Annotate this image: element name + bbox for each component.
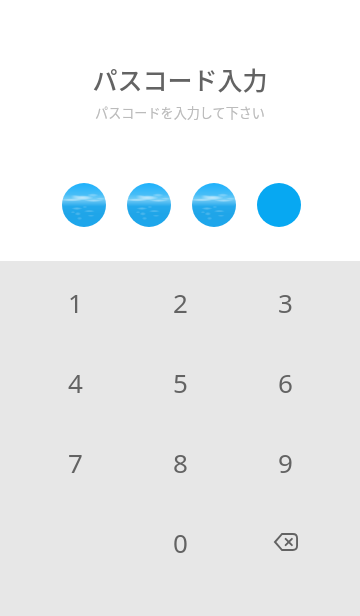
other: Delete bbox=[274, 533, 298, 551]
staticText: 4 bbox=[68, 365, 83, 400]
staticText: 2 bbox=[173, 285, 188, 320]
button[interactable]: 5 bbox=[128, 342, 233, 422]
staticText: 0 bbox=[173, 525, 188, 560]
staticText: 3 bbox=[278, 285, 293, 320]
staticText: 6 bbox=[278, 365, 293, 400]
button[interactable]: 0 bbox=[128, 502, 233, 582]
button[interactable]: 8 bbox=[128, 422, 233, 502]
staticText: 8 bbox=[173, 445, 188, 480]
button[interactable]: 3 bbox=[233, 262, 338, 342]
staticText: 7 bbox=[68, 445, 83, 480]
button[interactable]: Delete bbox=[233, 502, 338, 582]
button[interactable]: 6 bbox=[233, 342, 338, 422]
staticText: 1 bbox=[68, 285, 83, 320]
button[interactable]: 4 bbox=[23, 342, 128, 422]
button[interactable]: 7 bbox=[23, 422, 128, 502]
button[interactable]: 2 bbox=[128, 262, 233, 342]
button[interactable]: 9 bbox=[233, 422, 338, 502]
staticText: パスコードを入力して下さい bbox=[95, 103, 265, 122]
staticText: 5 bbox=[173, 365, 188, 400]
staticText: 9 bbox=[278, 445, 293, 480]
staticText: パスコード入力 bbox=[92, 61, 268, 97]
button[interactable]: 1 bbox=[23, 262, 128, 342]
